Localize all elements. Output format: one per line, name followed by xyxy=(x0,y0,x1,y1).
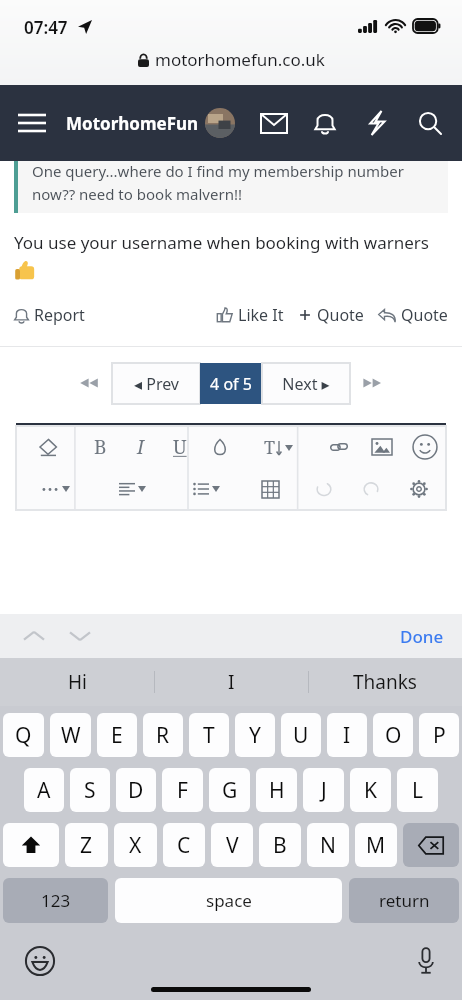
button[interactable]: Notifications xyxy=(303,85,347,161)
button[interactable]: F xyxy=(162,768,203,812)
button[interactable]: Search xyxy=(408,85,452,161)
button[interactable] xyxy=(169,468,243,510)
button[interactable] xyxy=(403,426,446,468)
button[interactable]: E xyxy=(97,713,137,757)
staticText: F xyxy=(177,776,188,805)
button[interactable]: Hi xyxy=(0,658,154,706)
button[interactable] xyxy=(392,468,446,510)
button[interactable]: L xyxy=(397,768,438,812)
staticText: A xyxy=(37,776,51,805)
button[interactable]: First page xyxy=(72,363,106,403)
button[interactable]: Previous field xyxy=(14,614,54,658)
button[interactable] xyxy=(16,426,80,468)
button[interactable]: Shift xyxy=(3,823,59,867)
button[interactable] xyxy=(317,426,360,468)
button[interactable]: P xyxy=(419,713,459,757)
button[interactable]: Emoji xyxy=(18,939,62,983)
button[interactable]: Dictation xyxy=(404,939,448,983)
button[interactable]: B xyxy=(259,823,301,867)
button[interactable] xyxy=(200,426,240,468)
button[interactable]: N xyxy=(307,823,349,867)
staticText: J xyxy=(321,776,327,805)
staticText: M xyxy=(366,831,386,860)
staticText: U xyxy=(173,434,187,460)
button[interactable]: Thanks xyxy=(308,658,462,706)
button[interactable]: O xyxy=(373,713,413,757)
button[interactable]: Q xyxy=(3,713,44,757)
button[interactable]: Y xyxy=(235,713,275,757)
button[interactable]: Quote xyxy=(298,300,364,330)
button[interactable]: T xyxy=(189,713,229,757)
button[interactable]: D xyxy=(116,768,156,812)
button[interactable]: space xyxy=(115,878,342,923)
button[interactable]: I xyxy=(120,426,160,468)
button[interactable]: ◂ Prev xyxy=(112,363,200,404)
button[interactable]: Backspace xyxy=(403,823,459,867)
button[interactable] xyxy=(95,468,169,510)
button[interactable] xyxy=(16,468,95,510)
button[interactable]: Done xyxy=(400,625,444,648)
button[interactable]: Messages xyxy=(252,85,296,161)
button[interactable]: Z xyxy=(65,823,108,867)
staticText: Hi xyxy=(68,669,87,695)
staticText: now?? need to book malvern!! xyxy=(32,184,242,204)
button[interactable]: I xyxy=(327,713,367,757)
button[interactable]: return xyxy=(349,878,459,923)
staticText: S xyxy=(84,776,96,805)
staticText: Quote xyxy=(317,304,364,326)
staticText: 123 xyxy=(41,889,71,912)
button[interactable]: U xyxy=(281,713,321,757)
staticText: Y xyxy=(249,721,261,750)
button[interactable]: Quote xyxy=(378,300,448,330)
button[interactable]: Report xyxy=(14,300,85,330)
button[interactable]: H xyxy=(256,768,297,812)
button[interactable]: U xyxy=(160,426,200,468)
staticText: X xyxy=(129,831,142,860)
staticText: V xyxy=(226,831,239,860)
staticText: Q xyxy=(15,721,32,750)
button[interactable]: Profile xyxy=(205,108,235,138)
button[interactable]: X xyxy=(114,823,157,867)
button[interactable] xyxy=(297,468,350,510)
button[interactable]: V xyxy=(211,823,253,867)
staticText: U xyxy=(293,721,309,750)
staticText: Next ▸ xyxy=(282,373,330,395)
staticText: E xyxy=(111,721,123,750)
button[interactable]: Like It xyxy=(217,300,284,330)
staticText: Thanks xyxy=(353,669,417,695)
staticText: H xyxy=(269,776,285,805)
button[interactable] xyxy=(243,468,297,510)
button[interactable]: S xyxy=(70,768,110,812)
button[interactable]: K xyxy=(350,768,391,812)
button[interactable]: M xyxy=(355,823,397,867)
button[interactable]: Menu xyxy=(8,85,56,161)
button[interactable]: A xyxy=(24,768,64,812)
button[interactable]: 4 of 5 xyxy=(200,363,262,404)
staticText: motorhomefun.co.uk xyxy=(155,48,325,71)
button[interactable] xyxy=(360,426,403,468)
button[interactable]: MotorhomeFun xyxy=(66,112,199,135)
button[interactable]: C xyxy=(163,823,205,867)
button[interactable]: Activity xyxy=(355,85,399,161)
staticText: P xyxy=(433,721,446,750)
staticText: One query...where do I find my membershi… xyxy=(32,161,404,181)
staticText: Like It xyxy=(238,304,284,326)
staticText: space xyxy=(206,889,252,912)
staticText: B xyxy=(94,434,107,460)
button[interactable]: 123 xyxy=(3,878,108,923)
button[interactable]: J xyxy=(303,768,344,812)
button[interactable]: R xyxy=(143,713,183,757)
button[interactable]: T xyxy=(240,426,317,468)
button[interactable]: I xyxy=(154,658,308,706)
button[interactable]: B xyxy=(80,426,120,468)
button[interactable]: Next field xyxy=(60,614,100,658)
staticText: C xyxy=(177,831,191,860)
button[interactable]: G xyxy=(209,768,250,812)
button[interactable] xyxy=(350,468,392,510)
staticText: return xyxy=(379,889,430,912)
staticText: O xyxy=(385,721,402,750)
button[interactable]: W xyxy=(50,713,91,757)
button[interactable]: Last page xyxy=(356,363,390,403)
button[interactable]: Next ▸ xyxy=(262,363,350,404)
staticText: Report xyxy=(34,304,85,326)
